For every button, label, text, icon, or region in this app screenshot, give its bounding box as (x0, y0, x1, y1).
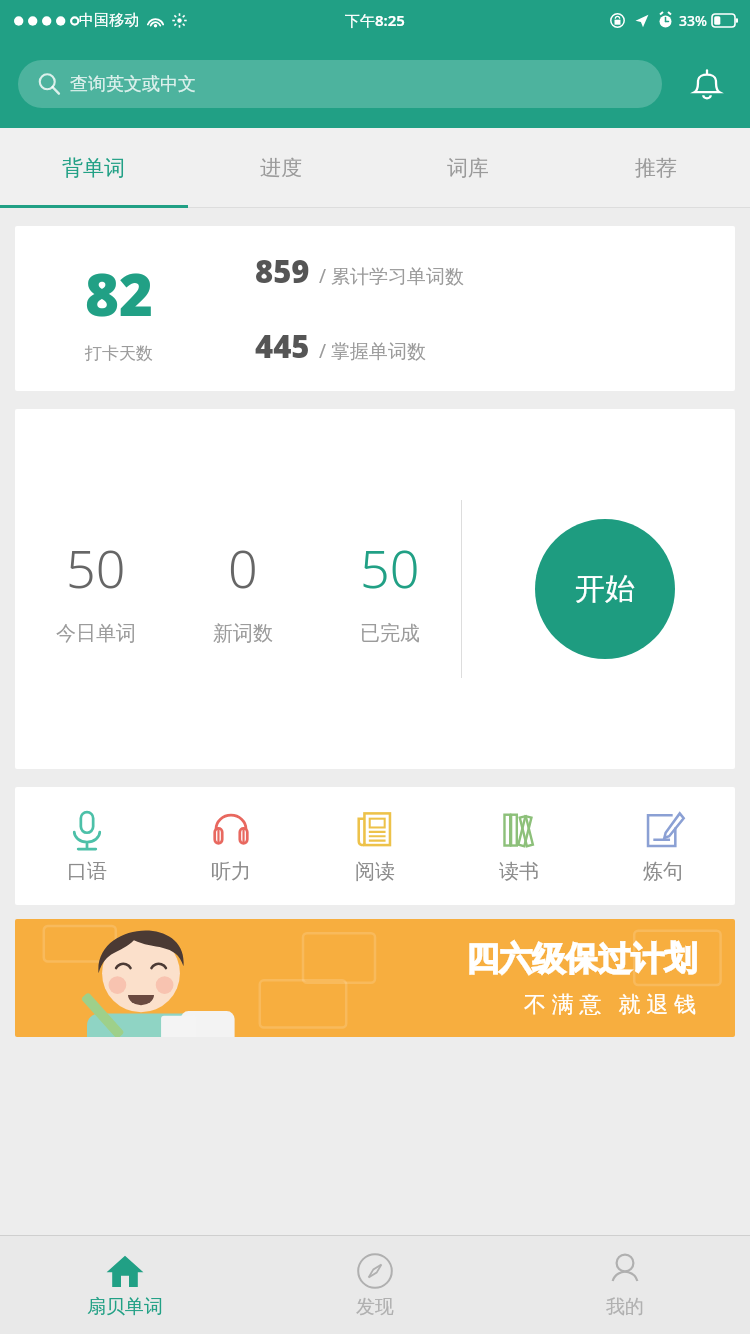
button[interactable]: 我的 (500, 1236, 750, 1334)
button[interactable]: 听力 (159, 787, 303, 905)
staticText: 50 (360, 532, 420, 603)
button[interactable]: 50 (316, 532, 463, 646)
staticText: 听力 (211, 859, 251, 884)
staticText: 不 满 意 就 退 钱 (524, 988, 697, 1018)
button[interactable]: 推荐 (562, 128, 750, 208)
staticText: 查询英文或中文 (70, 73, 196, 96)
button[interactable]: 口语 (15, 787, 159, 905)
staticText: 推荐 (635, 155, 677, 181)
staticText: 445 (255, 325, 310, 367)
button[interactable]: 词库 (374, 128, 562, 208)
staticText: 四六级保过计划 (466, 938, 697, 980)
staticText: 我的 (606, 1295, 644, 1319)
button[interactable]: 背单词 (0, 128, 187, 208)
staticText: 打卡天数 (85, 343, 153, 364)
staticText: / 累计学习单词数 (319, 263, 465, 289)
staticText: 开始 (575, 570, 635, 608)
button[interactable]: 扇贝单词 (0, 1236, 250, 1334)
staticText: 已完成 (360, 621, 420, 646)
staticText: / 掌握单词数 (319, 338, 427, 364)
button[interactable]: 0 (169, 532, 316, 646)
staticText: 50 (66, 532, 126, 603)
staticText: 今日单词 (56, 621, 136, 646)
staticText: 读书 (499, 859, 539, 884)
button[interactable]: 读书 (447, 787, 591, 905)
staticText: 33% (679, 11, 707, 30)
staticText: 下午8:25 (345, 10, 405, 30)
staticText: 阅读 (355, 859, 395, 884)
button[interactable]: 阅读 (303, 787, 447, 905)
staticText: 新词数 (213, 621, 273, 646)
staticText: 扇贝单词 (87, 1295, 163, 1319)
button[interactable]: 开始 (535, 519, 675, 659)
button[interactable]: Notifications (682, 59, 732, 109)
button[interactable]: 炼句 (591, 787, 735, 905)
button[interactable]: 进度 (187, 128, 374, 208)
staticText: 口语 (67, 859, 107, 884)
staticText: 0 (228, 532, 258, 603)
button[interactable]: 查询英文或中文 (18, 60, 662, 108)
staticText: 炼句 (643, 859, 683, 884)
staticText: 中国移动 (79, 11, 139, 30)
button[interactable]: 发现 (250, 1236, 500, 1334)
button[interactable]: 50 (23, 532, 169, 646)
button[interactable]: 82 (15, 226, 735, 391)
staticText: 82 (85, 254, 153, 333)
staticText: 词库 (447, 155, 489, 181)
staticText: 859 (255, 250, 310, 292)
staticText: 进度 (260, 155, 302, 181)
staticText: 发现 (356, 1295, 394, 1319)
staticText: 背单词 (62, 155, 125, 181)
button[interactable]: 四六级保过计划 (15, 919, 735, 1037)
